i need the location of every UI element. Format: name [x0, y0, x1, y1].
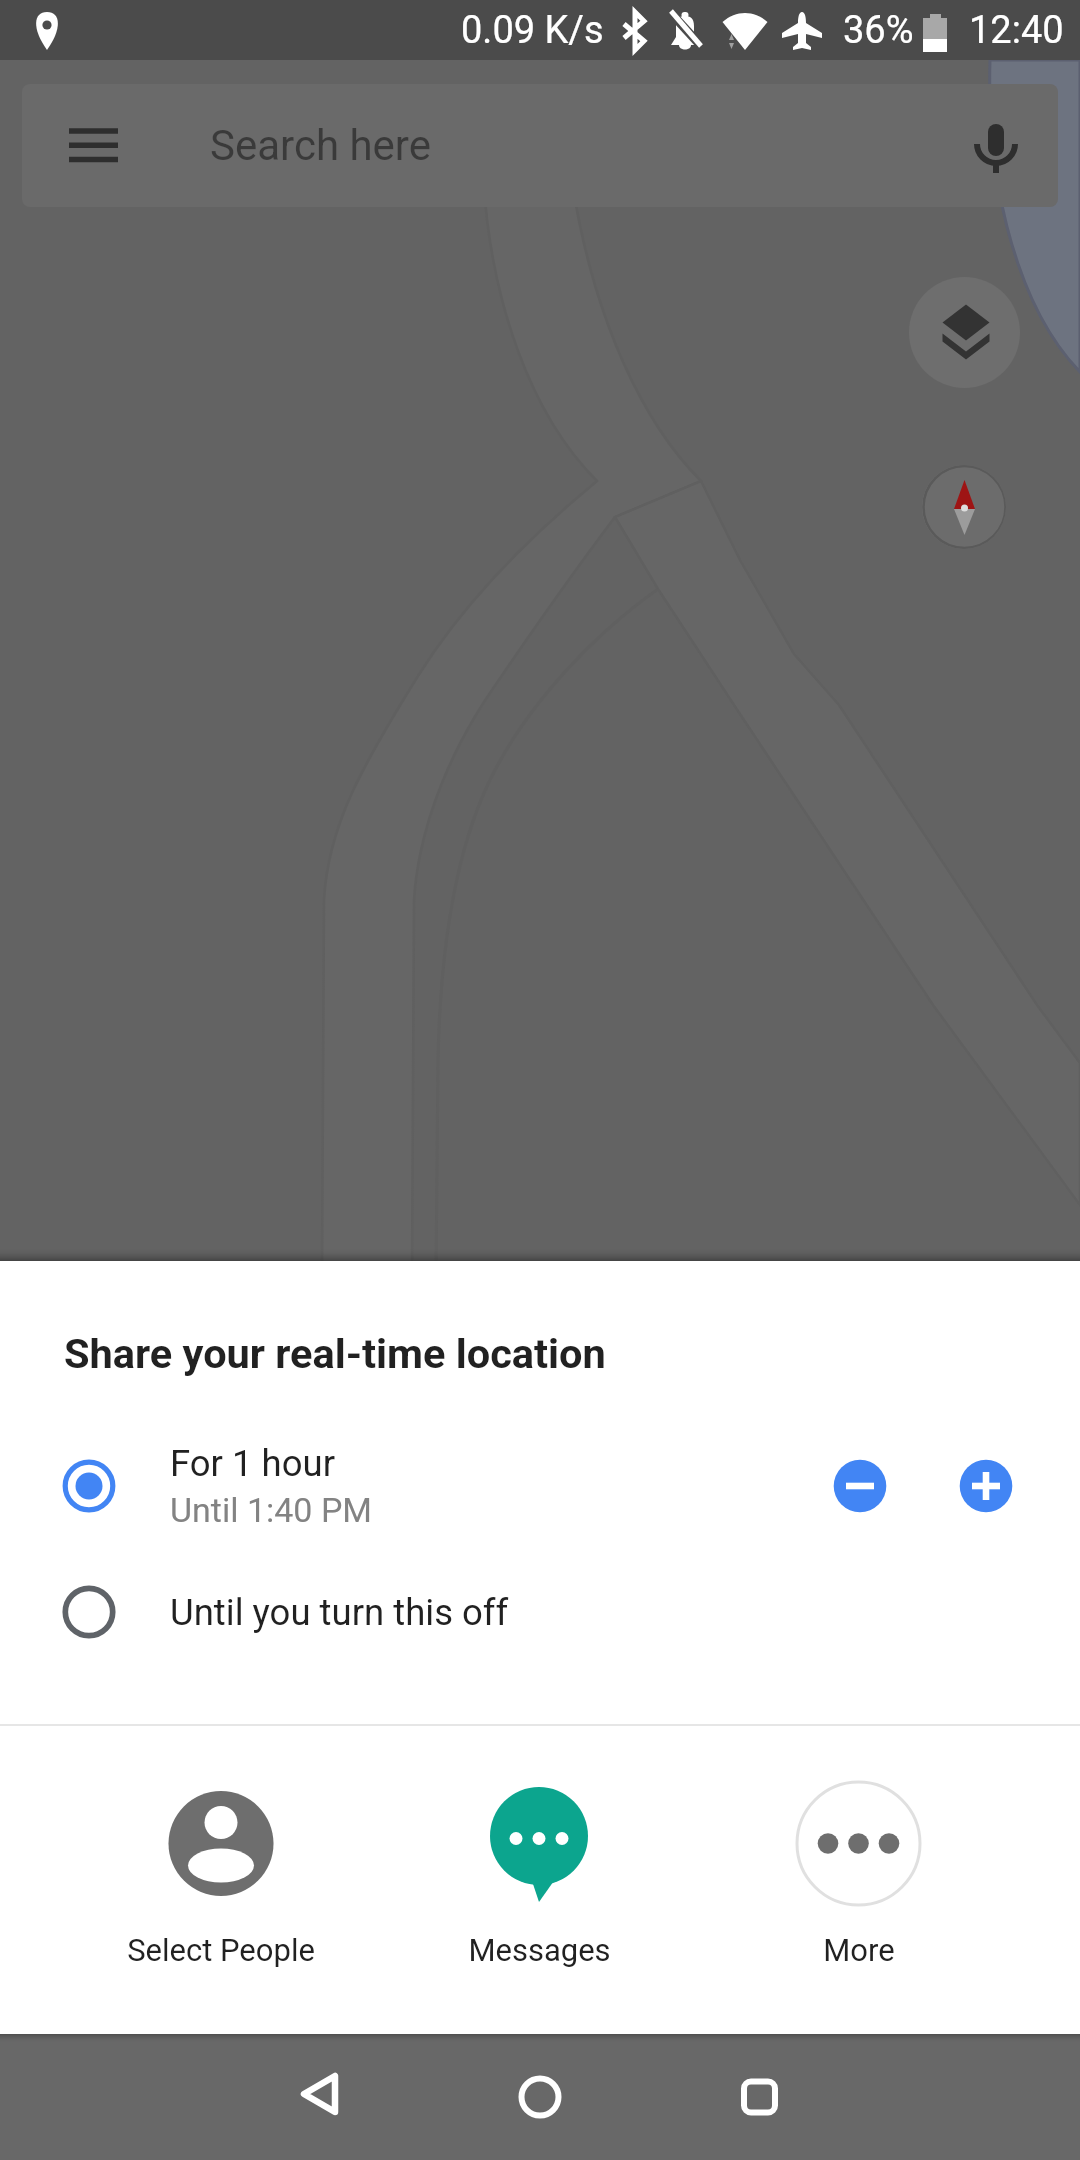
button[interactable]: Increase time: [934, 1434, 1038, 1538]
button[interactable]: Map layers: [909, 277, 1020, 388]
button[interactable]: More: [699, 1791, 1018, 1968]
staticText: For 1 hour: [170, 1442, 336, 1485]
staticText: Search here: [210, 121, 431, 170]
staticText: Until 1:40 PM: [170, 1490, 373, 1530]
staticText: Select People: [127, 1932, 315, 1968]
button[interactable]: Until you turn this off: [0, 1557, 1080, 1667]
staticText: Messages: [468, 1932, 611, 1968]
staticText: Share your real-time location: [64, 1329, 606, 1378]
staticText: More: [823, 1932, 895, 1968]
staticText: Until you turn this off: [170, 1591, 509, 1634]
button[interactable]: Messages: [380, 1791, 699, 1968]
staticText: 0.09 K/s: [461, 8, 604, 53]
button[interactable]: For 1 hour: [0, 1431, 1080, 1541]
button[interactable]: Decrease time: [808, 1434, 912, 1538]
button[interactable]: Select People: [62, 1791, 380, 1968]
staticText: 36%: [843, 8, 914, 53]
button[interactable]: Search here: [22, 84, 1058, 207]
staticText: 12:40: [969, 8, 1064, 53]
button[interactable]: Compass: [922, 465, 1006, 549]
